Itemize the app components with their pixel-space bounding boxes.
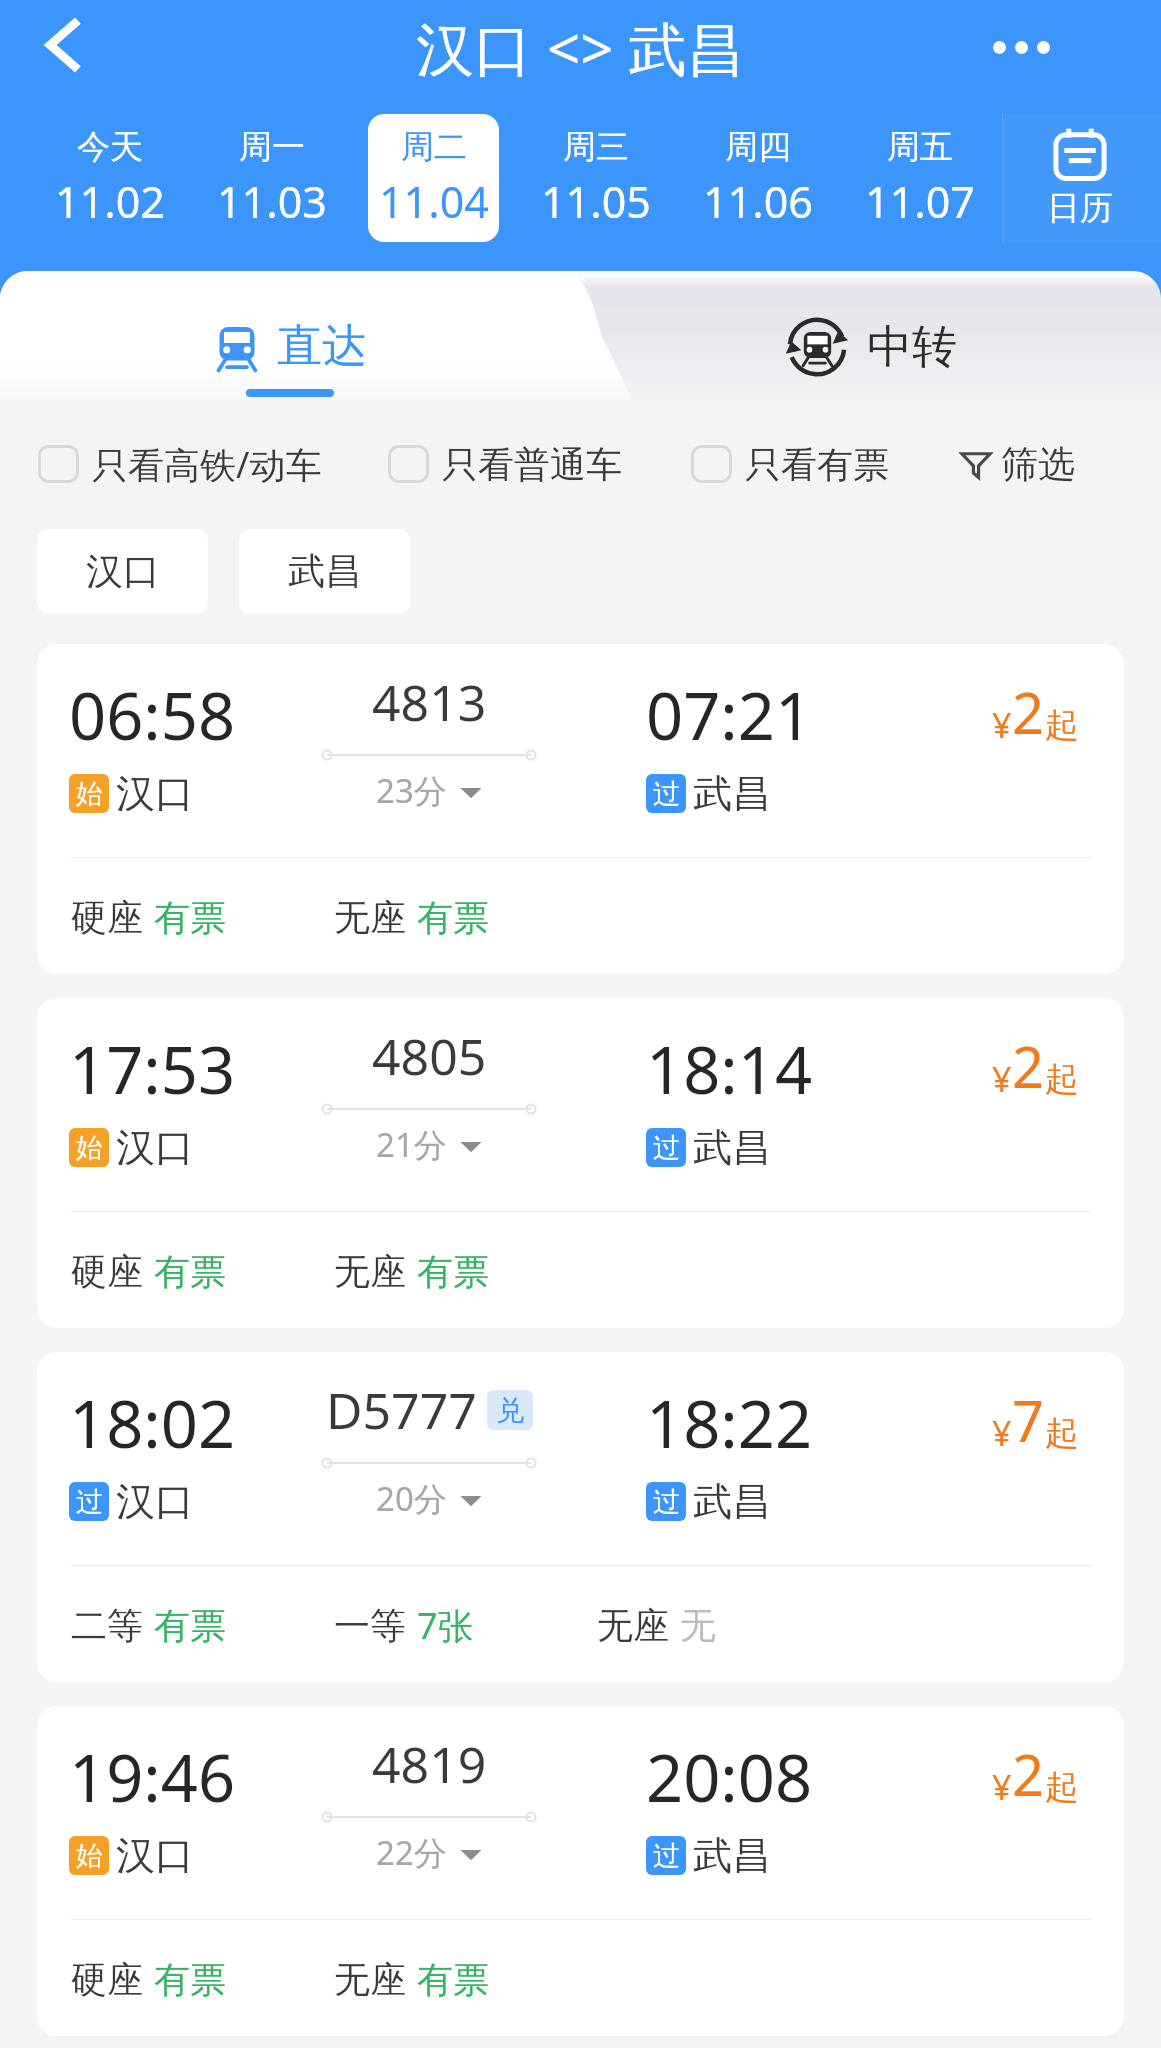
staticText: 11.06 bbox=[703, 172, 813, 231]
button[interactable]: 中转 bbox=[580, 271, 1161, 400]
staticText: 武昌 bbox=[693, 1123, 771, 1172]
staticText: 无座 bbox=[597, 1603, 669, 1648]
staticText: 21分 bbox=[376, 1122, 447, 1167]
staticText: 20:08 bbox=[646, 1733, 813, 1822]
button[interactable]: 直达 bbox=[0, 271, 580, 400]
staticText: 只看普通车 bbox=[442, 442, 622, 487]
staticText: 2 bbox=[1012, 1028, 1045, 1104]
staticText: 有票 bbox=[154, 895, 226, 940]
staticText: 周五 bbox=[887, 126, 953, 168]
button[interactable]: 只看有票 bbox=[691, 426, 889, 502]
button[interactable]: Back bbox=[19, 0, 109, 90]
staticText: 无座 bbox=[334, 895, 406, 940]
button[interactable]: 17:53 bbox=[37, 998, 1124, 1328]
staticText: 17:53 bbox=[69, 1025, 236, 1114]
staticText: 兑 bbox=[496, 1393, 524, 1428]
staticText: 硬座 bbox=[71, 1249, 143, 1294]
staticText: 过 bbox=[653, 1839, 680, 1873]
staticText: 19:46 bbox=[69, 1733, 236, 1822]
staticText: 周一 bbox=[239, 126, 305, 168]
staticText: 2 bbox=[1012, 1736, 1045, 1812]
staticText: 起 bbox=[1045, 1058, 1079, 1101]
staticText: 有票 bbox=[154, 1249, 226, 1294]
staticText: 18:14 bbox=[646, 1025, 813, 1114]
staticText: 起 bbox=[1045, 1412, 1079, 1455]
staticText: 武昌 bbox=[288, 548, 362, 595]
staticText: 06:58 bbox=[69, 671, 236, 760]
staticText: 起 bbox=[1045, 1766, 1079, 1809]
staticText: 日历 bbox=[1047, 187, 1113, 229]
staticText: 07:21 bbox=[646, 671, 813, 760]
staticText: 始 bbox=[76, 1839, 103, 1873]
staticText: 18:02 bbox=[69, 1379, 236, 1468]
staticText: 23分 bbox=[376, 768, 447, 813]
button[interactable]: 汉口 bbox=[37, 529, 208, 614]
staticText: 7 bbox=[1012, 1382, 1045, 1458]
staticText: 过 bbox=[653, 777, 680, 811]
staticText: ¥ bbox=[992, 702, 1012, 748]
staticText: 7张 bbox=[417, 1601, 474, 1650]
staticText: 11.03 bbox=[217, 172, 327, 231]
button[interactable]: 18:02 bbox=[37, 1352, 1124, 1682]
staticText: 始 bbox=[76, 777, 103, 811]
staticText: 有票 bbox=[417, 1249, 489, 1294]
staticText: 武昌 bbox=[693, 1831, 771, 1880]
staticText: 周二 bbox=[401, 126, 467, 168]
staticText: ¥ bbox=[992, 1410, 1012, 1456]
button[interactable]: 周五 bbox=[854, 114, 985, 242]
staticText: 汉口 <> 武昌 bbox=[416, 8, 745, 87]
staticText: 武昌 bbox=[693, 769, 771, 818]
staticText: 硬座 bbox=[71, 895, 143, 940]
button[interactable]: Calendar bbox=[1000, 108, 1159, 248]
staticText: 起 bbox=[1045, 704, 1079, 747]
button[interactable]: 只看高铁/动车 bbox=[38, 426, 322, 502]
button[interactable]: More options bbox=[993, 26, 1093, 68]
staticText: 11.07 bbox=[865, 172, 975, 231]
staticText: 汉口 bbox=[116, 769, 194, 818]
staticText: 汉口 bbox=[116, 1831, 194, 1880]
staticText: 汉口 bbox=[116, 1477, 194, 1526]
staticText: 无 bbox=[680, 1603, 716, 1648]
staticText: 汉口 bbox=[86, 548, 160, 595]
staticText: 4813 bbox=[372, 668, 487, 736]
staticText: 11.05 bbox=[541, 172, 651, 231]
button[interactable]: 只看普通车 bbox=[388, 426, 622, 502]
button[interactable]: 周三 bbox=[530, 114, 661, 242]
staticText: 过 bbox=[653, 1485, 680, 1519]
button[interactable]: 今天 bbox=[44, 114, 175, 242]
staticText: 无座 bbox=[334, 1957, 406, 2002]
button[interactable]: 筛选 bbox=[960, 426, 1075, 502]
staticText: 只看有票 bbox=[745, 442, 889, 487]
staticText: 4819 bbox=[372, 1730, 487, 1798]
staticText: 22分 bbox=[376, 1830, 447, 1875]
button[interactable]: 19:46 bbox=[37, 1706, 1124, 2036]
staticText: 筛选 bbox=[1001, 441, 1075, 488]
staticText: 硬座 bbox=[71, 1957, 143, 2002]
staticText: 一等 bbox=[334, 1603, 406, 1648]
staticText: 武昌 bbox=[693, 1477, 771, 1526]
staticText: 有票 bbox=[417, 1957, 489, 2002]
staticText: 二等 bbox=[71, 1603, 143, 1648]
staticText: 周四 bbox=[725, 126, 791, 168]
staticText: 2 bbox=[1012, 674, 1045, 750]
button[interactable]: 周一 bbox=[206, 114, 337, 242]
button[interactable]: 武昌 bbox=[239, 529, 410, 614]
staticText: 18:22 bbox=[646, 1379, 813, 1468]
staticText: 汉口 bbox=[116, 1123, 194, 1172]
staticText: ¥ bbox=[992, 1056, 1012, 1102]
staticText: 有票 bbox=[417, 895, 489, 940]
staticText: 过 bbox=[653, 1131, 680, 1165]
staticText: 中转 bbox=[867, 319, 957, 376]
staticText: 4805 bbox=[372, 1022, 487, 1090]
staticText: D5777 bbox=[326, 1376, 477, 1444]
staticText: 始 bbox=[76, 1131, 103, 1165]
button[interactable]: 06:58 bbox=[37, 644, 1124, 974]
staticText: 过 bbox=[76, 1485, 103, 1519]
staticText: 周三 bbox=[563, 126, 629, 168]
staticText: 有票 bbox=[154, 1957, 226, 2002]
button[interactable]: 周四 bbox=[692, 114, 823, 242]
staticText: 直达 bbox=[277, 318, 367, 375]
button[interactable]: 周二 bbox=[368, 114, 499, 242]
staticText: 11.02 bbox=[55, 172, 165, 231]
staticText: 有票 bbox=[154, 1603, 226, 1648]
